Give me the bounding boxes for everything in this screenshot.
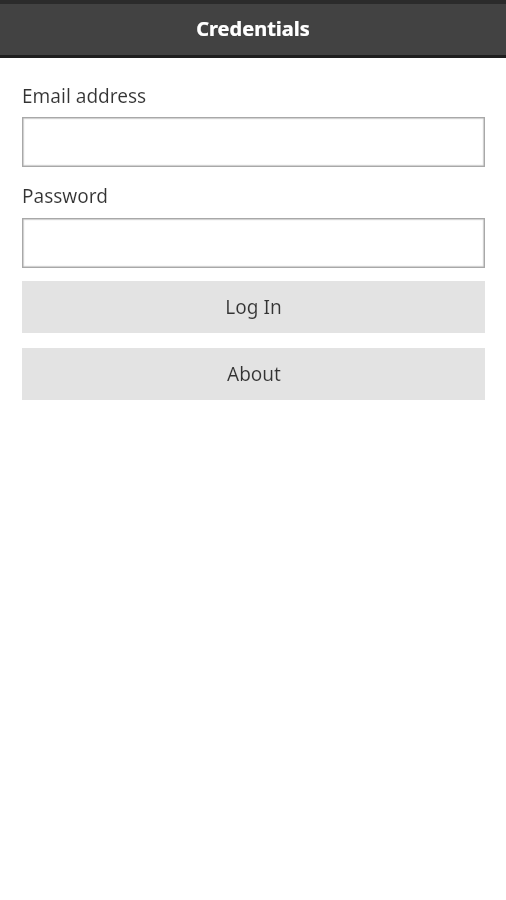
button[interactable]: About (22, 348, 485, 400)
staticText: Credentials (196, 15, 310, 42)
staticText: Log In (225, 294, 282, 320)
button[interactable]: Log In (22, 281, 485, 333)
staticText: About (227, 361, 281, 387)
button[interactable] (22, 218, 485, 268)
staticText: Email address (22, 83, 147, 109)
staticText: Password (22, 183, 108, 209)
button[interactable] (22, 117, 485, 167)
